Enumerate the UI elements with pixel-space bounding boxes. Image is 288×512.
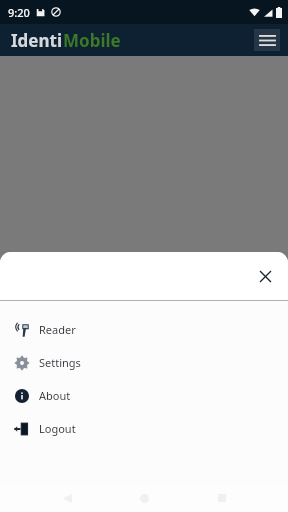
staticText: 9:20: [8, 5, 30, 20]
button[interactable]: Settings: [0, 346, 288, 379]
button[interactable]: Open menu: [254, 29, 280, 51]
staticText: Identi: [11, 29, 63, 52]
staticText: Settings: [39, 355, 81, 370]
staticText: Mobile: [63, 29, 121, 52]
button[interactable]: About: [0, 379, 288, 412]
button[interactable]: Close: [252, 263, 278, 289]
staticText: Reader: [39, 322, 76, 337]
button[interactable]: Recents: [211, 487, 233, 509]
button[interactable]: Reader: [0, 313, 288, 346]
staticText: About: [39, 388, 71, 403]
button[interactable]: Home: [133, 487, 155, 509]
staticText: Logout: [39, 421, 76, 436]
button[interactable]: Logout: [0, 412, 288, 445]
button[interactable]: Back: [56, 487, 78, 509]
